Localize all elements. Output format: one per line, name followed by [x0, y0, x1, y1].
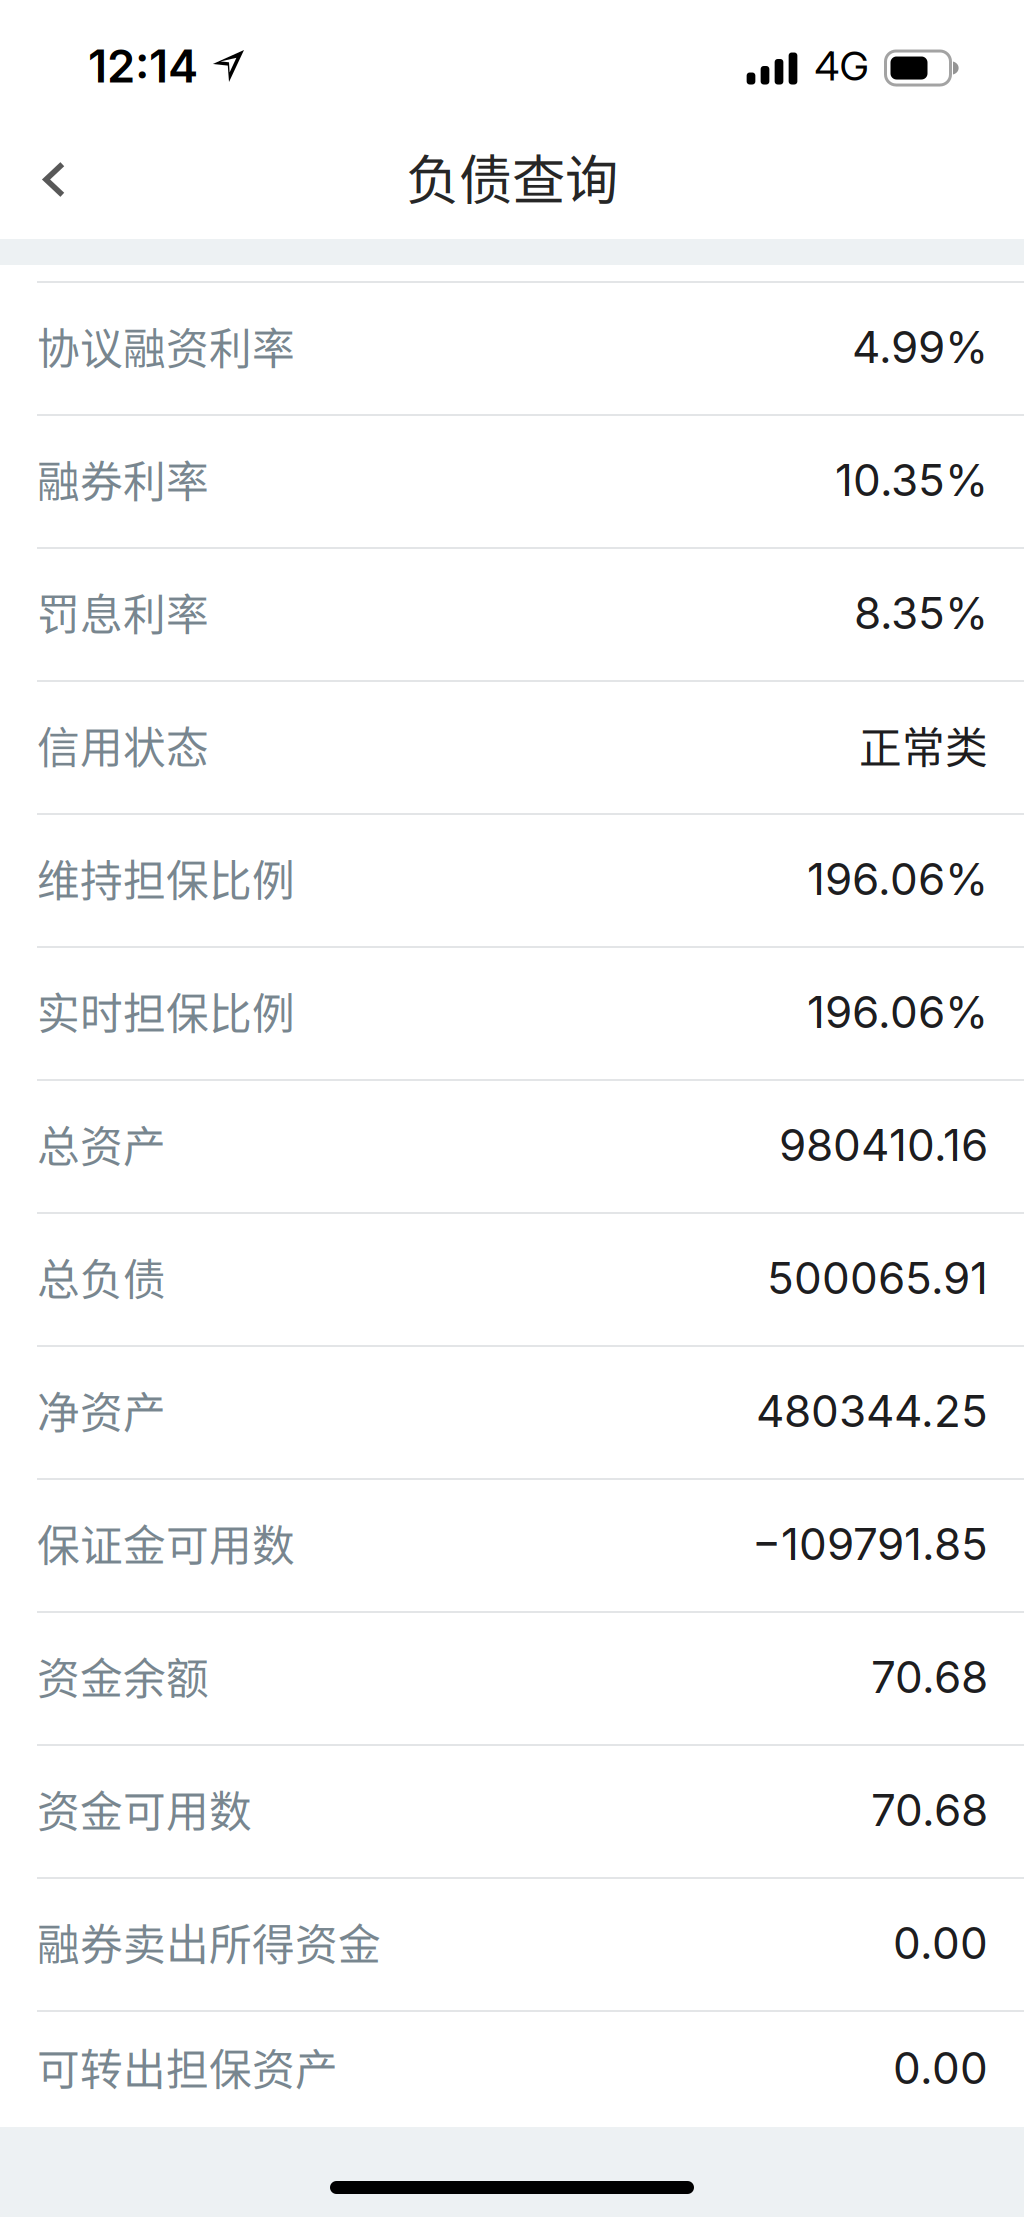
staticText: 正常类 — [859, 714, 988, 776]
staticText: 保证金可用数 — [37, 1512, 295, 1574]
staticText: 480344.25 — [756, 1384, 988, 1438]
staticText: 总负债 — [37, 1246, 166, 1308]
staticText: 4G — [814, 42, 868, 90]
staticText: 资金余额 — [37, 1645, 209, 1707]
staticText: 协议融资利率 — [37, 315, 295, 377]
staticText: 0.00 — [893, 2041, 988, 2095]
staticText: 70.68 — [871, 1650, 988, 1704]
button[interactable]: 实时担保比例 — [0, 948, 1024, 1081]
button[interactable]: 总资产 — [0, 1081, 1024, 1214]
staticText: 500065.91 — [767, 1251, 988, 1305]
staticText: 196.06% — [807, 852, 988, 906]
staticText: 10.35% — [835, 453, 988, 507]
staticText: 维持担保比例 — [37, 847, 295, 909]
button[interactable]: 罚息利率 — [0, 549, 1024, 682]
button[interactable]: Back — [0, 139, 103, 231]
button[interactable]: 保证金可用数 — [0, 1480, 1024, 1613]
staticText: 实时担保比例 — [37, 980, 295, 1042]
button[interactable]: 净资产 — [0, 1347, 1024, 1480]
button[interactable]: 融券卖出所得资金 — [0, 1879, 1024, 2012]
button[interactable]: 可转出担保资产 — [0, 2012, 1024, 2127]
staticText: 12:14 — [88, 39, 198, 93]
staticText: 负债查询 — [406, 138, 618, 215]
staticText: 980410.16 — [779, 1118, 988, 1172]
button[interactable]: 资金可用数 — [0, 1746, 1024, 1879]
button[interactable]: 维持担保比例 — [0, 815, 1024, 948]
button[interactable]: 资金余额 — [0, 1613, 1024, 1746]
button[interactable]: 协议融资利率 — [0, 283, 1024, 416]
staticText: 融券卖出所得资金 — [37, 1911, 381, 1973]
staticText: 70.68 — [871, 1783, 988, 1837]
button[interactable]: 融券利率 — [0, 416, 1024, 549]
staticText: 0.00 — [893, 1916, 988, 1970]
staticText: 资金可用数 — [37, 1778, 252, 1840]
staticText: 196.06% — [807, 985, 988, 1039]
staticText: 信用状态 — [37, 714, 209, 776]
staticText: 可转出担保资产 — [37, 2036, 338, 2098]
staticText: 罚息利率 — [37, 581, 209, 643]
staticText: 8.35% — [854, 586, 988, 640]
staticText: 总资产 — [37, 1113, 166, 1175]
staticText: 4.99% — [852, 320, 988, 374]
staticText: −109791.85 — [752, 1517, 988, 1571]
staticText: 净资产 — [37, 1379, 166, 1441]
button[interactable]: 总负债 — [0, 1214, 1024, 1347]
staticText: 融券利率 — [37, 448, 209, 510]
button[interactable]: 信用状态 — [0, 682, 1024, 815]
